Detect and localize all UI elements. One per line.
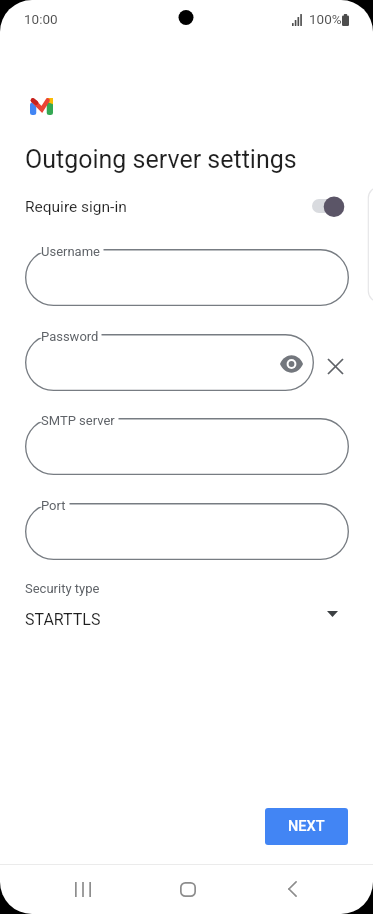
- staticText: 10:00: [24, 11, 58, 27]
- button[interactable]: STARTTLS: [0, 606, 373, 632]
- button[interactable]: Select security type: [320, 602, 344, 626]
- staticText: Username: [41, 244, 100, 259]
- staticText: Security type: [25, 581, 100, 596]
- button[interactable]: Recent apps: [59, 865, 107, 913]
- button[interactable]: Home: [164, 865, 212, 913]
- button[interactable]: Require sign-in: [0, 190, 373, 224]
- staticText: Password: [41, 329, 99, 344]
- button[interactable]: Username: [25, 250, 349, 307]
- button[interactable]: Back: [268, 865, 316, 913]
- staticText: 100%: [309, 11, 342, 27]
- staticText: Require sign-in: [25, 198, 127, 216]
- button[interactable]: SMTP server: [25, 419, 349, 476]
- button[interactable]: Port: [25, 504, 349, 561]
- staticText: NEXT: [288, 818, 325, 835]
- button[interactable]: Password: [25, 335, 314, 392]
- staticText: SMTP server: [41, 413, 115, 428]
- button[interactable]: Require sign-in: [308, 193, 348, 221]
- button[interactable]: Show password: [276, 349, 306, 379]
- staticText: Port: [41, 498, 66, 513]
- button[interactable]: Clear password: [321, 352, 349, 380]
- button[interactable]: NEXT: [265, 808, 348, 845]
- staticText: STARTTLS: [25, 610, 101, 629]
- staticText: Outgoing server settings: [25, 145, 297, 174]
